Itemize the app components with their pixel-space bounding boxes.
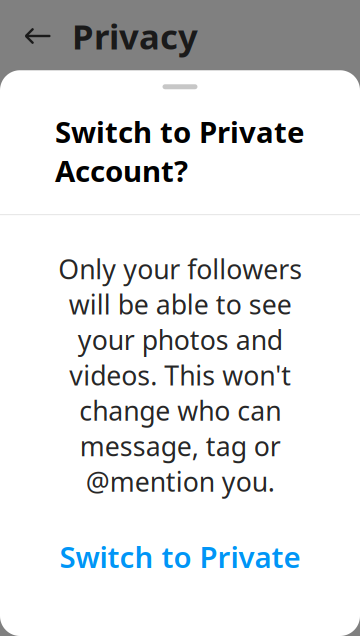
staticText: Only your followers will be able to see … — [58, 251, 302, 499]
button[interactable]: Back — [12, 10, 64, 62]
staticText: Mentions — [64, 434, 186, 471]
button[interactable]: Tags — [0, 362, 360, 422]
staticText: Everyone — [237, 375, 346, 409]
staticText: Privacy — [72, 13, 198, 59]
staticText: Comments — [64, 314, 207, 351]
button[interactable]: Switch to Private — [0, 521, 360, 592]
button[interactable]: @ — [0, 422, 360, 482]
staticText: Switch to Private — [59, 537, 300, 576]
staticText: Everyone — [237, 315, 346, 349]
staticText: Private Account — [64, 159, 268, 196]
staticText: Tags — [64, 374, 123, 411]
staticText: Everyone — [237, 435, 346, 469]
button[interactable]: Private Account — [0, 150, 360, 206]
staticText: Account Privacy — [14, 90, 212, 124]
staticText: Switch to Private Account? — [55, 112, 305, 190]
button[interactable]: Story — [0, 482, 360, 542]
staticText: Interactions — [14, 253, 163, 286]
button[interactable]: Comments — [0, 302, 360, 362]
